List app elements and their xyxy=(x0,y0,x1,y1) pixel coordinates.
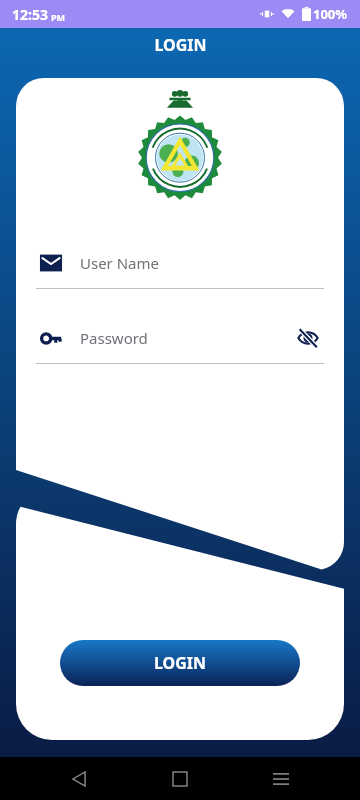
staticText: Password xyxy=(80,328,148,348)
staticText: LOGIN xyxy=(154,652,207,674)
button[interactable]: LOGIN xyxy=(60,640,300,686)
staticText: PM xyxy=(51,11,66,23)
button[interactable]: Recents xyxy=(259,757,303,800)
staticText: User Name xyxy=(80,253,160,273)
staticText: 100% xyxy=(313,5,348,23)
button[interactable]: Password xyxy=(36,321,324,364)
staticText: LOGIN xyxy=(154,34,207,56)
button[interactable]: User Name xyxy=(36,246,324,289)
staticText: 12:53 xyxy=(12,5,48,24)
button[interactable]: Back xyxy=(57,757,101,800)
button[interactable]: Home xyxy=(158,757,202,800)
button[interactable]: Show password xyxy=(292,322,324,354)
